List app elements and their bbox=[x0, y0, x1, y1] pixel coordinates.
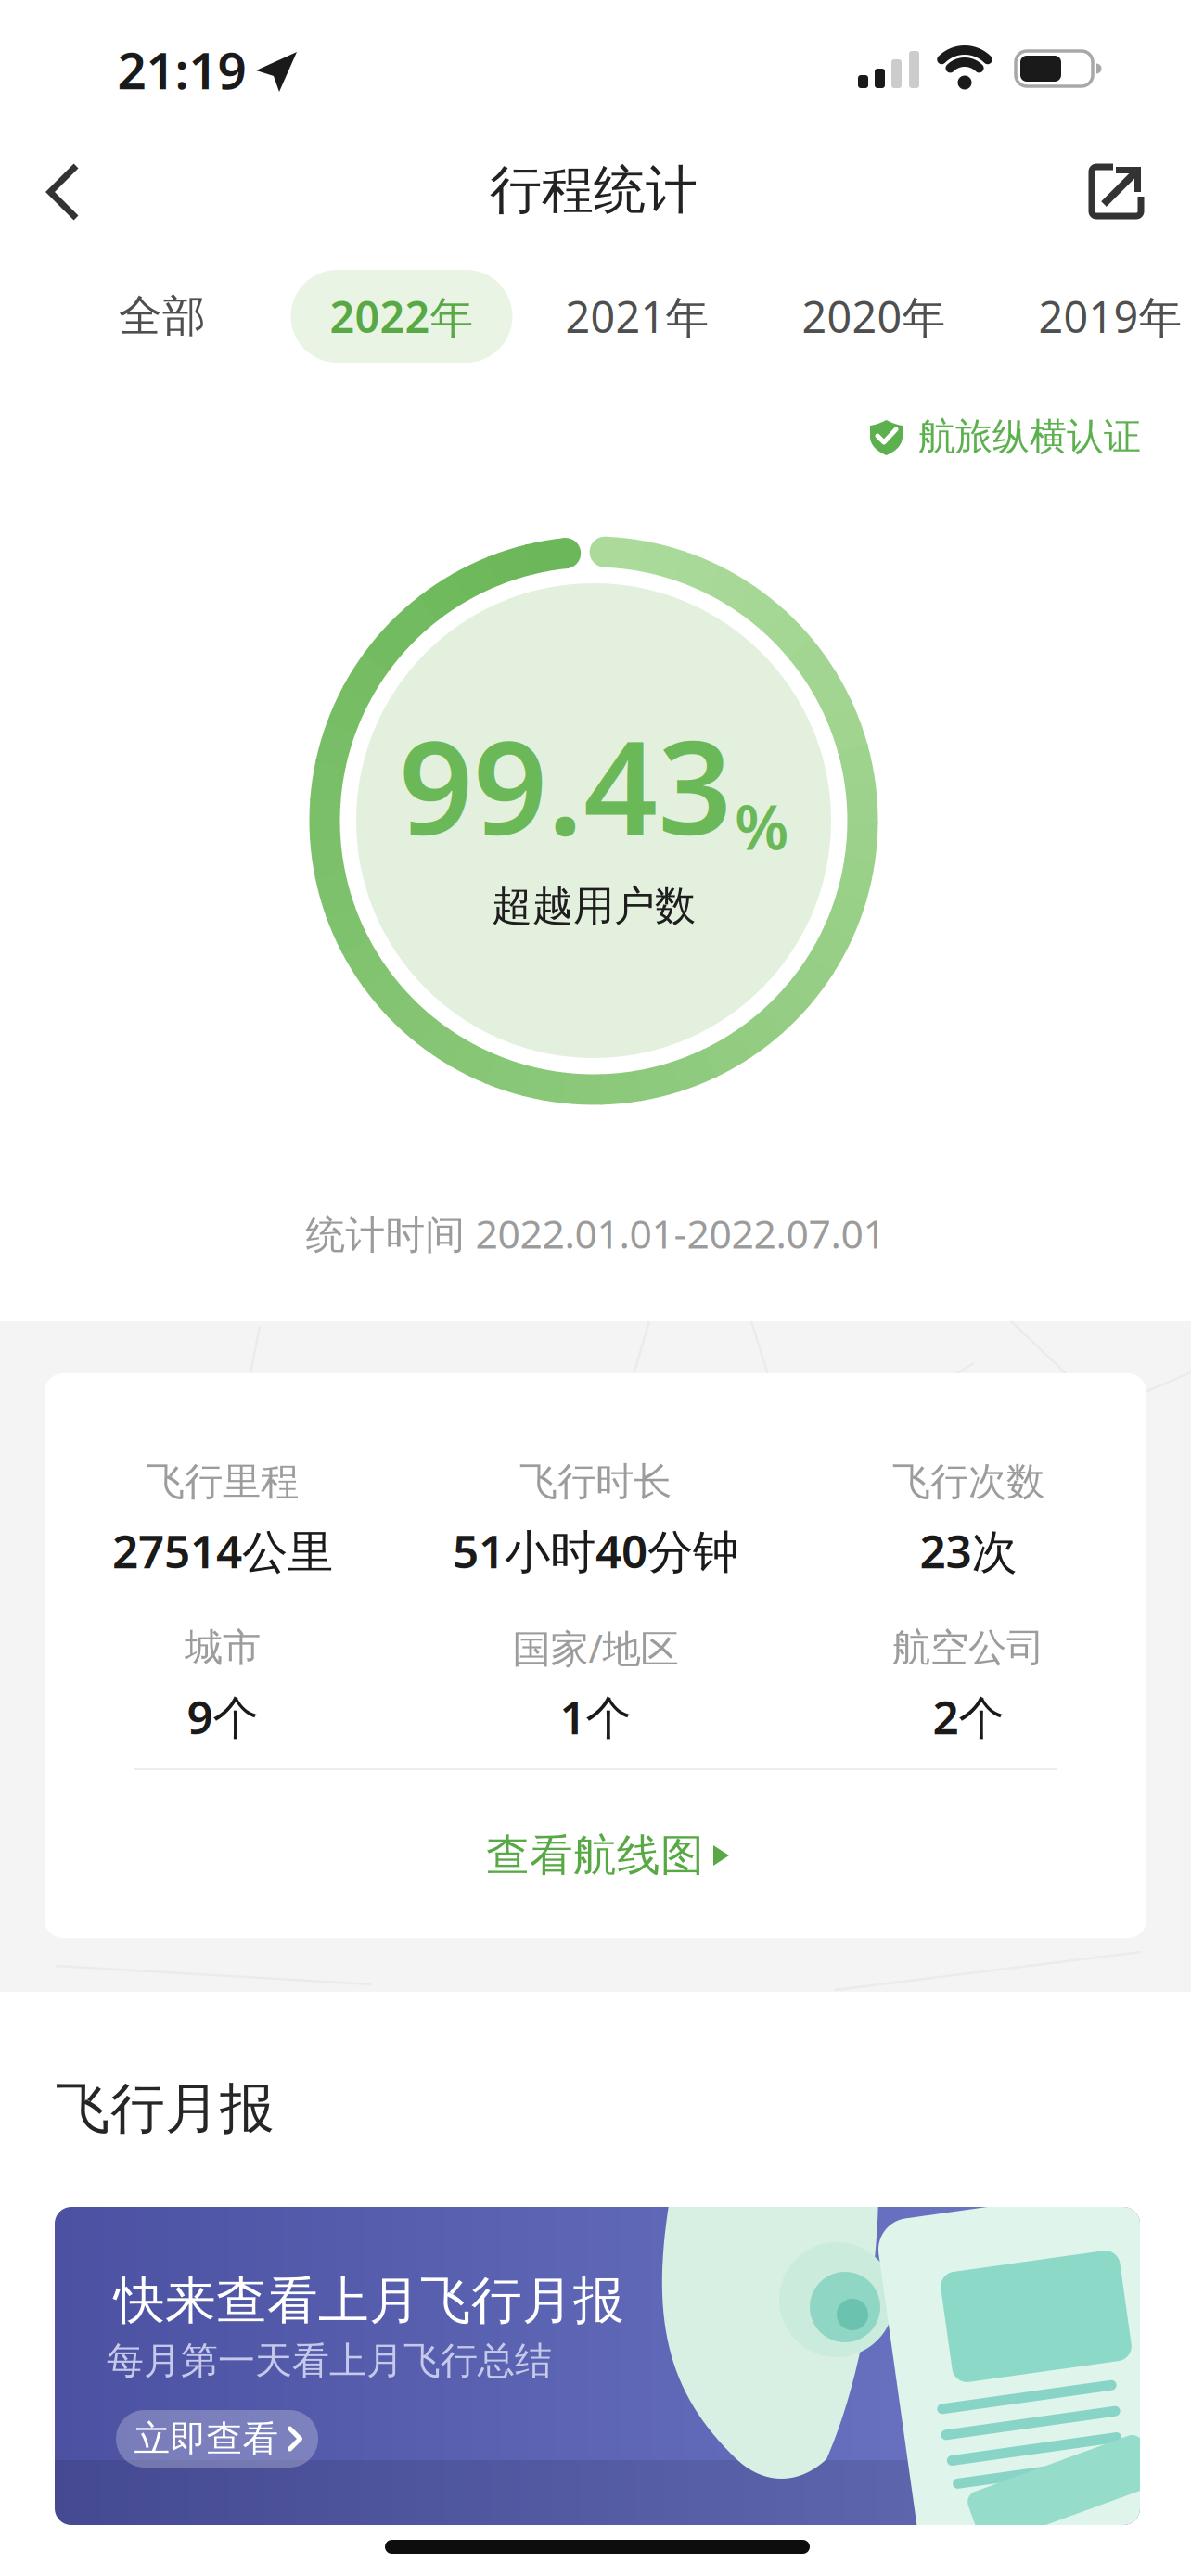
staticText: 快来查看上月飞行月报 bbox=[114, 2269, 624, 2332]
staticText: 飞行时长 bbox=[519, 1458, 672, 1505]
button[interactable]: 查看航线图 bbox=[422, 1814, 793, 1897]
staticText: 2个 bbox=[933, 1686, 1004, 1747]
staticText: 立即查看 bbox=[134, 2417, 279, 2461]
staticText: 城市 bbox=[185, 1624, 261, 1671]
staticText: 国家/地区 bbox=[512, 1622, 679, 1673]
staticText: 航空公司 bbox=[892, 1624, 1044, 1671]
staticText: 51小时40分钟 bbox=[453, 1520, 738, 1581]
button[interactable]: 2022年 bbox=[291, 270, 512, 363]
staticText: 99.43 bbox=[399, 698, 732, 871]
button[interactable]: 快来查看上月飞行月报 bbox=[55, 2207, 1140, 2525]
staticText: 统计时间 2022.01.01-2022.07.01 bbox=[306, 1207, 885, 1260]
staticText: 每月第一天看上月飞行总结 bbox=[107, 2338, 552, 2384]
staticText: 23次 bbox=[920, 1520, 1017, 1581]
button[interactable]: 2020年 bbox=[772, 270, 976, 363]
staticText: 飞行次数 bbox=[892, 1458, 1044, 1505]
staticText: 航旅纵横认证 bbox=[918, 414, 1141, 459]
staticText: 全部 bbox=[119, 290, 206, 343]
staticText: 2020年 bbox=[802, 287, 946, 345]
staticText: 超越用户数 bbox=[492, 881, 696, 931]
staticText: 2022年 bbox=[330, 287, 474, 345]
button[interactable]: 2019年 bbox=[1008, 270, 1191, 363]
staticText: 1个 bbox=[560, 1686, 631, 1747]
staticText: 行程统计 bbox=[490, 158, 698, 222]
staticText: 2021年 bbox=[565, 287, 709, 345]
staticText: 21:19 bbox=[117, 36, 246, 103]
staticText: % bbox=[735, 785, 788, 867]
staticText: 27514公里 bbox=[112, 1520, 333, 1581]
staticText: 查看航线图 bbox=[486, 1829, 704, 1882]
button[interactable]: 全部 bbox=[60, 270, 264, 363]
staticText: 9个 bbox=[187, 1686, 258, 1747]
staticText: 飞行月报 bbox=[56, 2075, 275, 2142]
staticText: 2019年 bbox=[1038, 287, 1182, 345]
button[interactable]: 2021年 bbox=[535, 270, 739, 363]
staticText: 飞行里程 bbox=[147, 1458, 299, 1505]
